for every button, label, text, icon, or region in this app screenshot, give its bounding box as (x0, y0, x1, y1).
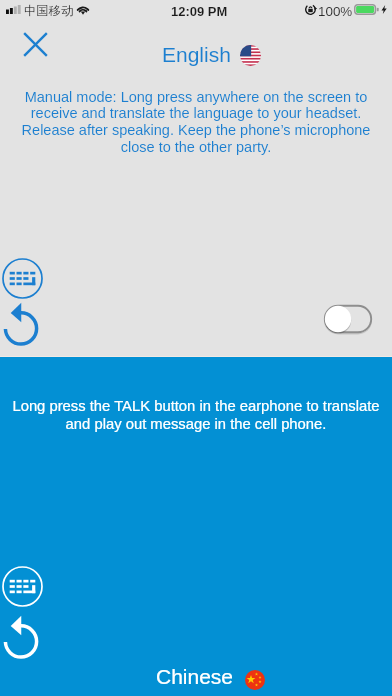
staticText: Long press the TALK button in the earpho… (6, 398, 386, 432)
staticText: 12:09 PM (171, 4, 228, 19)
staticText: English (162, 43, 231, 66)
staticText: 中国移动 (24, 3, 74, 18)
button[interactable]: Auto mode toggle (323, 304, 373, 334)
button[interactable]: English (158, 42, 264, 70)
staticText: Manual mode: Long press anywhere on the … (20, 89, 372, 155)
button[interactable]: Keyboard (2, 258, 43, 299)
button[interactable]: Chinese (152, 664, 268, 694)
button[interactable]: Undo (2, 622, 40, 660)
staticText: Chinese (156, 665, 234, 688)
button[interactable]: Close (12, 21, 59, 68)
button[interactable]: Undo (2, 309, 40, 347)
staticText: 100% (318, 4, 353, 19)
button[interactable]: Keyboard (2, 566, 43, 607)
